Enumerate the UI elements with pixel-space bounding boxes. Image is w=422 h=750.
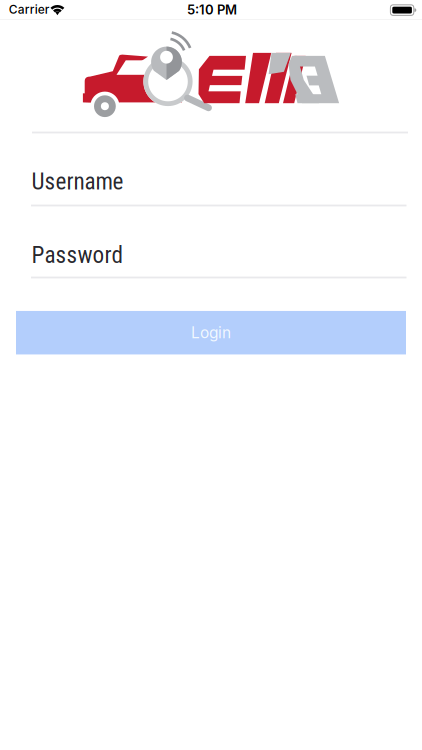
staticText: Password (31, 241, 123, 269)
button[interactable]: Login (16, 311, 406, 354)
staticText: Carrier (9, 2, 50, 17)
staticText: 5:10 PM (187, 2, 237, 18)
staticText: Login (191, 323, 231, 342)
button[interactable]: Password (16, 232, 406, 277)
staticText: Username (31, 168, 123, 195)
button[interactable]: Username (16, 159, 406, 204)
